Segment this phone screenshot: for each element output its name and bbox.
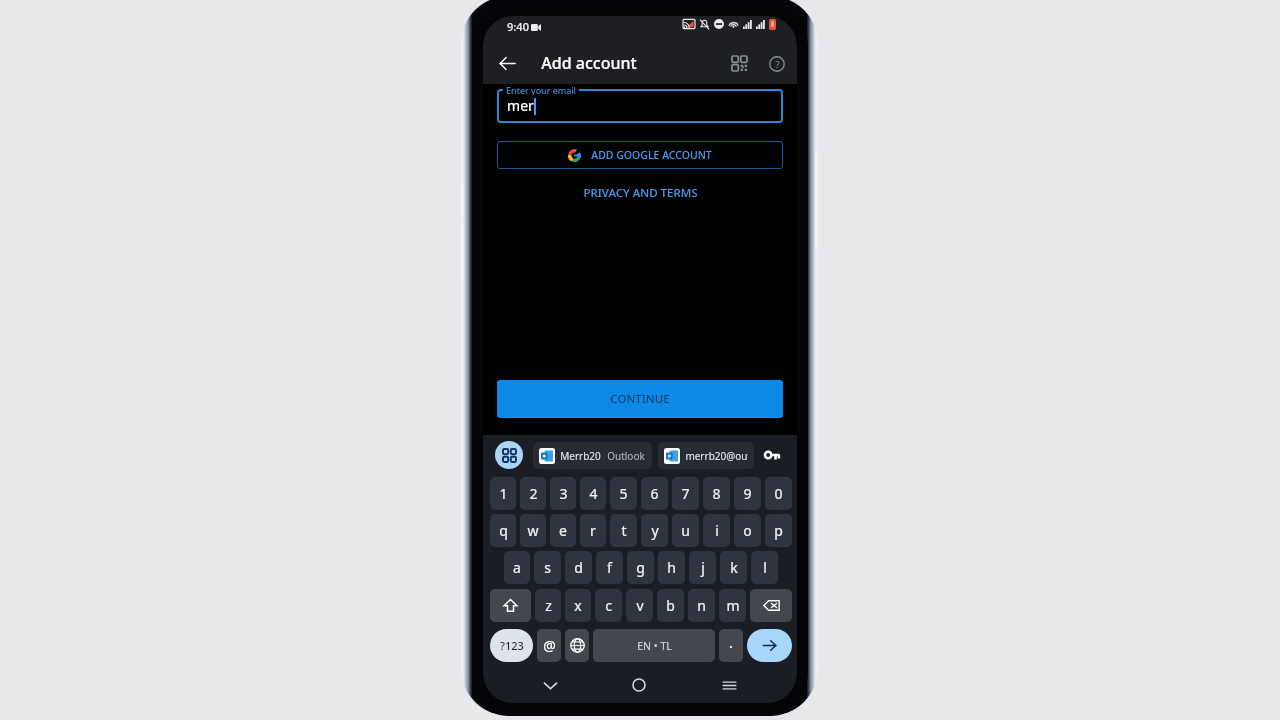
button[interactable]: l	[751, 551, 778, 584]
staticText: 9	[743, 484, 752, 503]
staticText: ?	[775, 58, 780, 71]
staticText: s	[544, 558, 551, 577]
staticText: Enter your email	[506, 84, 576, 95]
button[interactable]: EN • TL	[593, 629, 715, 662]
staticText: .	[729, 633, 733, 652]
staticText: Outlook	[607, 449, 645, 463]
staticText: g	[636, 558, 645, 577]
button[interactable]: ADD GOOGLE ACCOUNT	[497, 141, 783, 169]
staticText: x	[574, 596, 582, 615]
button[interactable]: v	[626, 589, 653, 622]
staticText: a	[513, 558, 521, 577]
button[interactable]: z	[535, 589, 561, 622]
staticText: 9:40	[507, 19, 529, 34]
staticText: PRIVACY AND TERMS	[583, 185, 698, 201]
staticText: Add account	[541, 52, 637, 74]
button[interactable]: j	[689, 551, 716, 584]
staticText: y	[651, 521, 659, 540]
staticText: 3	[559, 484, 568, 503]
staticText: mer	[507, 96, 534, 115]
staticText: j	[701, 558, 705, 577]
button[interactable]: Scan QR code	[720, 44, 758, 82]
staticText: n	[697, 596, 706, 615]
button[interactable]: p	[765, 514, 792, 547]
button[interactable]: e	[550, 514, 576, 547]
staticText: 6	[650, 484, 659, 503]
button[interactable]: Help	[758, 45, 796, 83]
button[interactable]: g	[627, 551, 654, 584]
button[interactable]: d	[565, 551, 592, 584]
button[interactable]: Home	[617, 666, 661, 703]
button[interactable]: f	[596, 551, 623, 584]
button[interactable]: Back	[488, 44, 526, 82]
button[interactable]: w	[520, 514, 546, 547]
staticText: m	[726, 596, 740, 615]
staticText: c	[605, 596, 612, 615]
button[interactable]: c	[595, 589, 622, 622]
staticText: o	[743, 521, 752, 540]
button[interactable]: Enter	[747, 629, 792, 662]
staticText: b	[666, 596, 675, 615]
staticText: ADD GOOGLE ACCOUNT	[591, 148, 712, 162]
button[interactable]: o	[734, 514, 761, 547]
staticText: p	[774, 521, 783, 540]
button[interactable]: Switch language	[565, 629, 589, 662]
button[interactable]: i	[703, 514, 730, 547]
staticText: 7	[681, 484, 690, 503]
button[interactable]: PRIVACY AND TERMS	[575, 182, 706, 204]
button[interactable]: Backspace	[750, 589, 792, 622]
button[interactable]: m	[719, 589, 746, 622]
button[interactable]	[497, 89, 783, 123]
staticText: l	[763, 558, 767, 577]
button[interactable]: ?123	[490, 629, 533, 662]
staticText: t	[621, 521, 627, 540]
button[interactable]: Recent apps	[707, 666, 751, 703]
button[interactable]: .	[719, 629, 743, 662]
staticText: 1	[499, 484, 508, 503]
button[interactable]: merrb20@outl	[658, 442, 754, 469]
staticText: EN • TL	[637, 639, 672, 653]
staticText: 2	[529, 484, 538, 503]
button[interactable]: 3	[550, 477, 576, 510]
button[interactable]: Clipboard	[495, 441, 523, 469]
button[interactable]: 9	[734, 477, 761, 510]
staticText: Merrb20	[560, 449, 601, 463]
button[interactable]: y	[641, 514, 668, 547]
staticText: 8	[712, 484, 721, 503]
staticText: z	[545, 596, 552, 615]
staticText: k	[730, 558, 738, 577]
button[interactable]: r	[580, 514, 606, 547]
staticText: @	[543, 636, 556, 655]
button[interactable]: 2	[520, 477, 546, 510]
button[interactable]: 8	[703, 477, 730, 510]
button[interactable]: a	[504, 551, 530, 584]
staticText: r	[590, 521, 596, 540]
button[interactable]: 1	[490, 477, 516, 510]
button[interactable]: q	[490, 514, 516, 547]
button[interactable]: 7	[672, 477, 699, 510]
button[interactable]: n	[688, 589, 715, 622]
staticText: i	[715, 521, 719, 540]
staticText: v	[636, 596, 644, 615]
button[interactable]: @	[537, 629, 561, 662]
button[interactable]: h	[658, 551, 685, 584]
button[interactable]: Hide keyboard	[528, 666, 572, 703]
button[interactable]: x	[565, 589, 591, 622]
button[interactable]: 0	[765, 477, 792, 510]
button[interactable]: CONTINUE	[497, 380, 783, 418]
button[interactable]: s	[534, 551, 561, 584]
staticText: d	[574, 558, 583, 577]
button[interactable]: b	[657, 589, 684, 622]
button[interactable]: u	[672, 514, 699, 547]
staticText: CONTINUE	[610, 391, 670, 407]
button[interactable]: k	[720, 551, 747, 584]
button[interactable]: 6	[641, 477, 668, 510]
button[interactable]: Merrb20	[533, 442, 652, 469]
button[interactable]: 5	[610, 477, 637, 510]
staticText: ?123	[500, 638, 524, 653]
button[interactable]: 4	[580, 477, 606, 510]
staticText: f	[607, 558, 612, 577]
button[interactable]: Shift	[490, 589, 531, 622]
button[interactable]: t	[610, 514, 637, 547]
button[interactable]: Passwords	[760, 443, 784, 467]
